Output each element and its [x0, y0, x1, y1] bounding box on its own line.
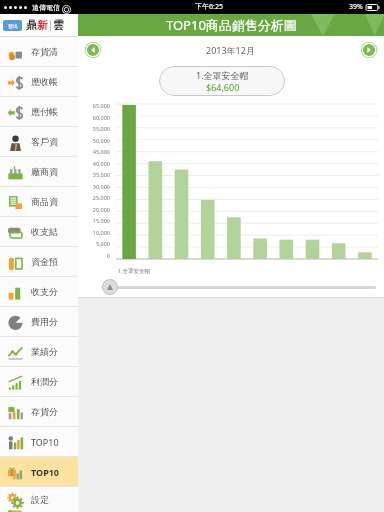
button[interactable]: 收支分 [0, 277, 78, 306]
staticText: 鼎 [26, 18, 37, 32]
staticText: 39% [349, 2, 363, 12]
staticText: 55,000 [84, 125, 110, 132]
staticText: 1.全罩安全帽 [118, 267, 151, 275]
staticText: 存貨清 [31, 46, 58, 57]
staticText: 客戶資 [31, 136, 58, 147]
button[interactable]: 應付帳 [0, 97, 78, 126]
staticText: 雲 [53, 18, 64, 32]
button[interactable]: Scroll chart [102, 279, 118, 295]
staticText: 下午6:25 [195, 2, 223, 12]
button[interactable]: 應收帳 [0, 67, 78, 96]
staticText: 設定 [31, 494, 49, 505]
staticText: 存貨分 [31, 406, 58, 417]
staticText: 登出 [8, 23, 18, 29]
staticText: 收支分 [31, 286, 58, 297]
staticText: 20,000 [84, 206, 110, 213]
button[interactable]: Previous month [84, 41, 102, 59]
staticText: 45,000 [84, 148, 110, 155]
staticText: 30,000 [84, 183, 110, 190]
staticText: 65,000 [84, 102, 110, 109]
button[interactable]: 設定 [0, 487, 78, 512]
button[interactable]: 收支結 [0, 217, 78, 246]
button[interactable]: TOP10 [0, 457, 78, 486]
staticText: 0 [84, 252, 110, 259]
staticText: 10,000 [84, 229, 110, 236]
button[interactable]: TOP10 [0, 427, 78, 456]
staticText: 35,000 [84, 171, 110, 178]
staticText: 2013年12月 [206, 44, 255, 56]
staticText: 1.全罩安全帽 [196, 69, 249, 81]
staticText: 新 [37, 18, 48, 32]
button[interactable]: Next month [360, 41, 378, 59]
button[interactable]: 資金預 [0, 247, 78, 276]
button[interactable]: 客戶資 [0, 127, 78, 156]
staticText: TOP10 [31, 436, 59, 448]
staticText: 應收帳 [31, 76, 58, 87]
button[interactable]: 廠商資 [0, 157, 78, 186]
staticText: TOP10商品銷售分析圖 [166, 16, 297, 34]
button[interactable]: 費用分 [0, 307, 78, 336]
staticText: 收支結 [31, 226, 58, 237]
staticText: 5,000 [84, 240, 110, 247]
staticText: 商品資 [31, 196, 58, 207]
staticText: 25,000 [84, 194, 110, 201]
button[interactable]: 1.全罩安全帽 [159, 66, 285, 96]
staticText: 費用分 [31, 316, 58, 327]
staticText: 60,000 [84, 114, 110, 121]
staticText: 遠傳電信 [32, 3, 60, 12]
staticText: $64,600 [206, 81, 240, 93]
button[interactable]: 商品資 [0, 187, 78, 216]
button[interactable]: 業績分 [0, 337, 78, 366]
staticText: 15,000 [84, 217, 110, 224]
staticText: 業績分 [31, 346, 58, 357]
staticText: 應付帳 [31, 106, 58, 117]
staticText: TOP10 [31, 466, 60, 478]
button[interactable]: 利潤分 [0, 367, 78, 396]
button[interactable]: 登出 [3, 20, 22, 31]
staticText: 50,000 [84, 137, 110, 144]
button[interactable]: 存貨清 [0, 37, 78, 66]
staticText: 40,000 [84, 160, 110, 167]
staticText: 資金預 [31, 256, 58, 267]
staticText: 廠商資 [31, 166, 58, 177]
button[interactable]: 存貨分 [0, 397, 78, 426]
staticText: 利潤分 [31, 376, 58, 387]
